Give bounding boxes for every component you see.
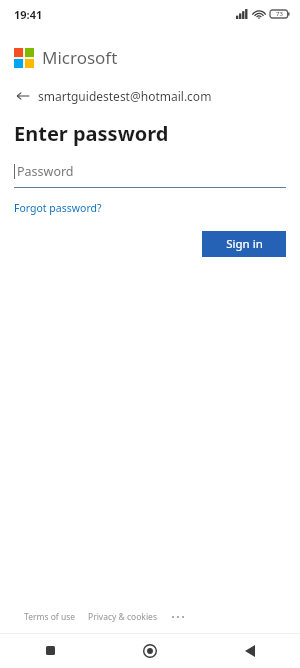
button[interactable]: Sign in [202,231,286,257]
other: Back [16,89,30,103]
staticText: Forgot password? [14,201,102,215]
staticText: 73 [276,10,283,18]
button[interactable]: Back [14,86,214,106]
button[interactable]: Password [14,163,286,188]
button[interactable]: Home [100,633,200,668]
staticText: Terms of use [24,611,76,623]
button[interactable]: Terms of use [24,611,76,623]
staticText: Enter password [14,120,169,147]
button[interactable]: Privacy & cookies [88,611,157,623]
staticText: Microsoft [42,46,118,69]
staticText: 19:41 [14,7,43,22]
staticText: Password [17,163,74,180]
button[interactable]: More options [169,611,187,623]
button[interactable]: Back [200,633,300,668]
staticText: smartguidestest@hotmail.com [38,88,212,104]
button[interactable]: Forgot password? [14,201,102,215]
button[interactable]: Recent apps [0,633,100,668]
staticText: Sign in [226,236,263,252]
staticText: Privacy & cookies [88,611,157,623]
